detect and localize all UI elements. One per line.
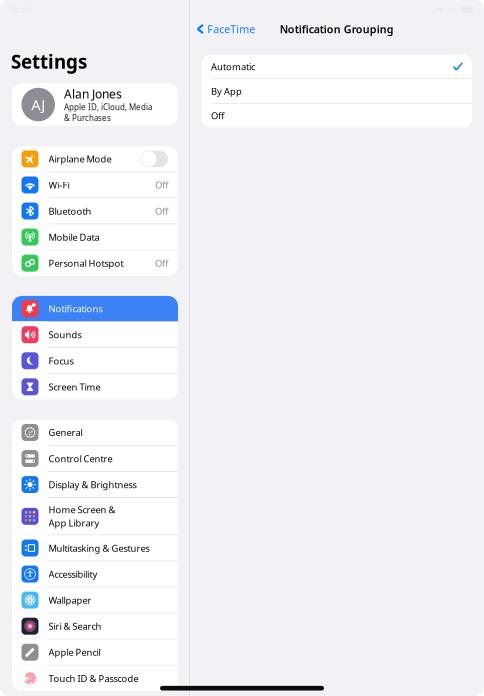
staticText: App Library <box>48 517 99 529</box>
button[interactable]: Airplane Mode <box>12 146 178 172</box>
button[interactable]: Off <box>202 104 472 127</box>
staticText: Automatic <box>211 60 255 73</box>
button[interactable]: AJ <box>12 83 178 126</box>
staticText: Accessibility <box>48 568 97 580</box>
button[interactable]: Home Screen & <box>12 498 178 535</box>
staticText: Mobile Data <box>48 231 99 243</box>
staticText: Sounds <box>48 328 81 341</box>
button[interactable]: Personal Hotspot <box>12 250 178 276</box>
staticText: & Purchases <box>64 112 111 123</box>
staticText: AJ <box>31 95 45 114</box>
staticText: Multitasking & Gestures <box>48 542 149 554</box>
button[interactable]: Mobile Data <box>12 224 178 250</box>
staticText: By App <box>211 85 242 97</box>
button[interactable]: Display & Brightness <box>12 472 178 497</box>
button[interactable]: General <box>12 420 178 445</box>
button[interactable]: Wi-Fi <box>12 172 178 198</box>
staticText: Bluetooth <box>48 205 91 217</box>
button[interactable]: Automatic <box>202 55 472 78</box>
button[interactable]: Screen Time <box>12 374 178 399</box>
staticText: Settings <box>11 49 87 74</box>
staticText: Apple Pencil <box>48 646 100 658</box>
staticText: Home Screen & <box>48 503 115 516</box>
button[interactable]: By App <box>202 79 472 103</box>
staticText: Off <box>155 179 168 191</box>
staticText: Personal Hotspot <box>48 257 123 269</box>
button[interactable]: Multitasking & Gestures <box>12 535 178 561</box>
staticText: Apple ID, iCloud, Media <box>64 102 152 112</box>
staticText: Notifications <box>48 302 102 315</box>
staticText: Display & Brightness <box>48 478 136 491</box>
button[interactable]: Siri & Search <box>12 613 178 639</box>
staticText: Siri & Search <box>48 620 101 632</box>
button[interactable]: Bluetooth <box>12 198 178 224</box>
staticText: Off <box>155 257 168 269</box>
button[interactable]: Touch ID & Passcode <box>12 665 178 691</box>
staticText: Touch ID & Passcode <box>48 672 138 684</box>
button[interactable]: Control Centre <box>12 446 178 471</box>
button[interactable]: Wallpaper <box>12 587 178 613</box>
staticText: Control Centre <box>48 452 112 465</box>
staticText: Off <box>155 205 168 217</box>
staticText: Notification Grouping <box>280 22 394 36</box>
staticText: General <box>48 426 82 439</box>
button[interactable]: Focus <box>12 348 178 373</box>
staticText: Airplane Mode <box>48 153 111 165</box>
button[interactable]: Apple Pencil <box>12 639 178 665</box>
staticText: Alan Jones <box>64 86 122 102</box>
staticText: Screen Time <box>48 381 100 393</box>
staticText: Wallpaper <box>48 594 91 606</box>
staticText: Focus <box>48 355 73 367</box>
button[interactable]: Sounds <box>12 322 178 347</box>
button[interactable]: FaceTime <box>193 18 259 40</box>
button[interactable]: Accessibility <box>12 561 178 587</box>
staticText: FaceTime <box>207 22 255 36</box>
staticText: Off <box>211 109 224 122</box>
button[interactable]: Notifications <box>12 296 178 321</box>
staticText: Wi-Fi <box>48 179 69 191</box>
